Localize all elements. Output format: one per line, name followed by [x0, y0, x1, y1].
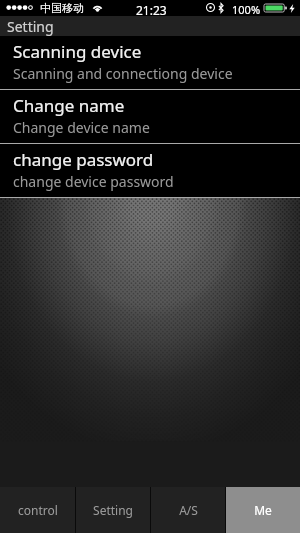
staticText: Scanning device — [13, 40, 142, 63]
button[interactable]: Scanning device — [0, 36, 300, 89]
button[interactable]: Me — [226, 487, 300, 533]
staticText: Change name — [13, 94, 125, 117]
staticText: Me — [254, 502, 272, 518]
button[interactable]: change password — [0, 144, 300, 197]
button[interactable]: control — [0, 487, 75, 533]
staticText: Scanning and connectiong device — [13, 64, 233, 83]
staticText: 中国移动 — [40, 1, 84, 15]
staticText: Change device name — [13, 118, 150, 137]
staticText: change password — [13, 148, 154, 171]
staticText: Setting — [93, 502, 133, 518]
button[interactable]: A/S — [151, 487, 225, 533]
button[interactable]: Setting — [76, 487, 150, 533]
button[interactable]: Change name — [0, 90, 300, 143]
staticText: 21:23 — [136, 2, 167, 18]
staticText: control — [18, 502, 58, 518]
staticText: change device password — [13, 172, 174, 191]
staticText: A/S — [179, 502, 198, 518]
staticText: 100% — [232, 2, 261, 17]
staticText: Setting — [7, 17, 54, 36]
